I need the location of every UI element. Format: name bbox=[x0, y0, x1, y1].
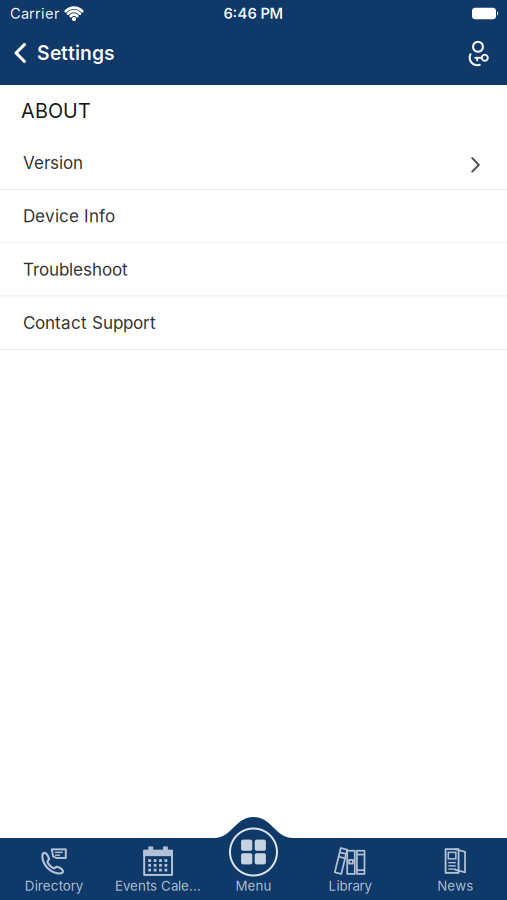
staticText: Device Info bbox=[23, 206, 115, 226]
staticText: Directory bbox=[25, 878, 83, 894]
button[interactable]: Back bbox=[0, 41, 115, 65]
staticText: 6:46 PM bbox=[223, 5, 283, 22]
button[interactable]: Switch user bbox=[466, 41, 507, 65]
staticText: Version bbox=[23, 152, 83, 173]
button[interactable]: Library bbox=[299, 840, 401, 895]
staticText: News bbox=[437, 878, 473, 894]
button[interactable]: Contact Support bbox=[0, 297, 507, 350]
button[interactable]: Device Info bbox=[0, 190, 507, 243]
staticText: Troubleshoot bbox=[23, 259, 128, 280]
button[interactable]: Menu bbox=[229, 827, 278, 876]
button[interactable]: Troubleshoot bbox=[0, 243, 507, 297]
button[interactable]: News bbox=[405, 840, 506, 895]
staticText: Carrier bbox=[10, 5, 60, 22]
button[interactable]: Menu bbox=[203, 840, 304, 895]
staticText: Settings bbox=[37, 41, 115, 65]
staticText: Contact Support bbox=[23, 312, 156, 333]
button[interactable]: Directory bbox=[3, 840, 104, 895]
staticText: Menu bbox=[235, 878, 271, 894]
staticText: Events Cale... bbox=[115, 878, 201, 894]
button[interactable]: Events Cale... bbox=[107, 840, 209, 895]
staticText: Library bbox=[328, 878, 371, 894]
staticText: ABOUT bbox=[21, 99, 91, 123]
button[interactable]: Version bbox=[0, 137, 507, 190]
